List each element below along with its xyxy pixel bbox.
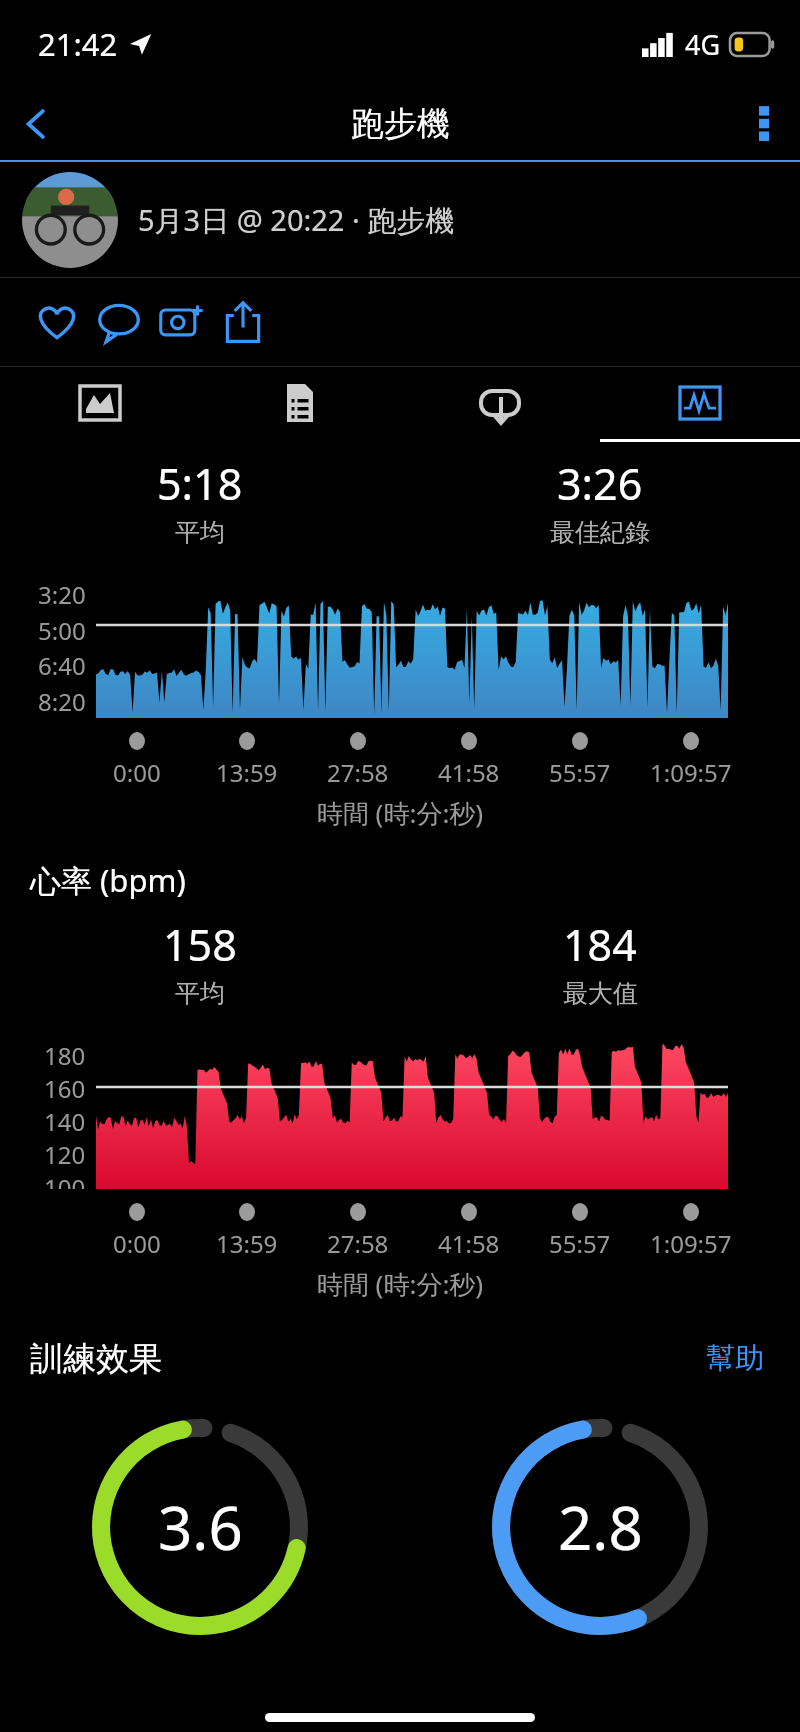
staticText: 6:40 <box>38 649 86 682</box>
staticText: 4G <box>685 26 721 63</box>
staticText: 2.8 <box>558 1486 643 1568</box>
button[interactable]: Details <box>200 367 400 439</box>
staticText: 最佳紀錄 <box>550 517 650 548</box>
staticText: 最大值 <box>563 978 638 1009</box>
button[interactable]: Back <box>0 88 72 160</box>
staticText: 41:58 <box>438 1227 500 1260</box>
staticText: 5:00 <box>38 614 86 647</box>
button[interactable]: Training effect 3.6 <box>90 1417 310 1637</box>
staticText: 1:09:57 <box>650 756 732 789</box>
staticText: 時間 (時:分:秒) <box>0 795 800 831</box>
button[interactable]: More options <box>728 88 800 160</box>
staticText: 8:20 <box>38 685 86 718</box>
staticText: 27:58 <box>327 1227 389 1260</box>
staticText: 180 <box>44 1039 86 1072</box>
staticText: 120 <box>44 1138 86 1171</box>
staticText: 160 <box>44 1072 86 1105</box>
staticText: 5月3日 @ 20:22 · 跑步機 <box>138 200 455 240</box>
button[interactable]: Comment <box>88 291 150 353</box>
button[interactable]: Map <box>0 367 200 439</box>
staticText: 平均 <box>175 517 225 548</box>
button[interactable]: Charts <box>600 367 800 439</box>
staticText: 0:00 <box>113 1227 161 1260</box>
staticText: 184 <box>563 915 637 974</box>
button[interactable]: Laps <box>400 367 600 439</box>
staticText: 158 <box>163 915 237 974</box>
staticText: 時間 (時:分:秒) <box>0 1266 800 1302</box>
staticText: 41:58 <box>438 756 500 789</box>
staticText: 100 <box>44 1171 86 1189</box>
button[interactable]: 幫助 <box>700 1334 770 1383</box>
staticText: 幫助 <box>706 1340 764 1377</box>
staticText: 0:00 <box>113 756 161 789</box>
staticText: 21:42 <box>38 23 118 65</box>
staticText: 3.6 <box>158 1486 243 1568</box>
button[interactable]: Training effect 2.8 <box>490 1417 710 1637</box>
staticText: 140 <box>44 1105 86 1138</box>
staticText: 5:18 <box>157 454 243 513</box>
staticText: 跑步機 <box>351 103 450 145</box>
button[interactable]: Like <box>26 291 88 353</box>
staticText: 55:57 <box>549 756 611 789</box>
staticText: 3:26 <box>557 454 643 513</box>
button[interactable]: Add photo <box>150 291 212 353</box>
staticText: 13:59 <box>216 1227 278 1260</box>
staticText: 1:09:57 <box>650 1227 732 1260</box>
staticText: 平均 <box>175 978 225 1009</box>
button[interactable]: Profile photo <box>22 172 118 268</box>
staticText: 27:58 <box>327 756 389 789</box>
staticText: 3:20 <box>38 578 86 611</box>
staticText: 心率 (bpm) <box>30 859 186 901</box>
staticText: 13:59 <box>216 756 278 789</box>
button[interactable]: Share <box>212 291 274 353</box>
staticText: 訓練效果 <box>30 1338 162 1380</box>
staticText: 55:57 <box>549 1227 611 1260</box>
